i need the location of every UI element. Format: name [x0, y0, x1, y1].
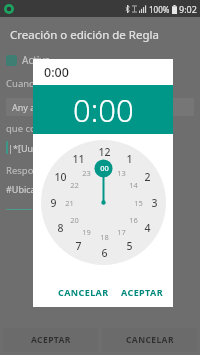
staticText: 10	[54, 170, 67, 184]
staticText: CANCELAR	[126, 334, 174, 346]
staticText: 12	[98, 145, 111, 159]
staticText: #Ubicacion	[6, 183, 54, 195]
staticText: 19	[82, 227, 91, 237]
staticText: 8	[57, 221, 64, 235]
staticText: Cuando llegue un mensaje	[6, 77, 125, 90]
staticText: 11	[72, 152, 85, 166]
staticText: |*[Uu]rgente	[8, 142, 65, 154]
staticText: Activa	[22, 53, 51, 67]
staticText: 16	[129, 215, 138, 225]
staticText: 7	[75, 239, 82, 253]
staticText: ACEPTAR	[121, 286, 163, 298]
staticText: 21	[65, 198, 74, 208]
staticText: 6	[101, 246, 108, 260]
staticText: 13	[117, 168, 126, 178]
staticText: 17	[117, 227, 126, 237]
button[interactable]: ACEPTAR	[115, 280, 169, 304]
staticText: 23	[82, 168, 91, 178]
staticText: 4	[144, 221, 151, 235]
staticText: 3	[151, 196, 158, 210]
staticText: 22	[70, 180, 79, 190]
staticText: 5	[126, 239, 133, 253]
staticText: 0:00	[44, 64, 69, 81]
staticText: que contenga	[6, 122, 68, 135]
staticText: 100%	[149, 4, 170, 15]
staticText: 18	[100, 232, 109, 242]
staticText: ACEPTAR	[31, 334, 71, 346]
staticText: 14	[129, 180, 138, 190]
staticText: 20	[70, 215, 79, 225]
staticText: Creación o edición de Regla	[10, 27, 159, 43]
button[interactable]: Hour selector clock face	[41, 140, 166, 265]
staticText: 9:02	[179, 3, 197, 15]
staticText: 0:00	[73, 89, 134, 131]
staticText: Any application	[12, 101, 77, 113]
button[interactable]: CANCELAR	[102, 328, 197, 352]
staticText: 00	[100, 163, 109, 173]
button[interactable]: ACEPTAR	[3, 328, 98, 352]
staticText: 15	[134, 198, 143, 208]
staticText: 1	[126, 152, 133, 166]
staticText: 2	[144, 170, 151, 184]
staticText: 9	[50, 196, 57, 210]
staticText: Responder con	[6, 164, 74, 177]
staticText: CANCELAR	[58, 286, 109, 298]
button[interactable]: CANCELAR	[52, 280, 115, 304]
